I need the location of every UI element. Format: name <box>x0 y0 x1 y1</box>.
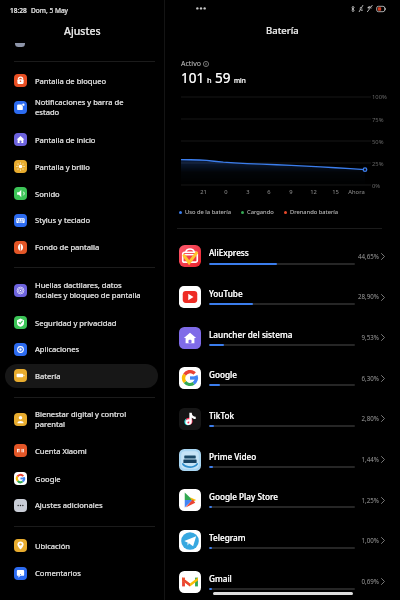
button[interactable] <box>165 440 400 480</box>
staticText: Google <box>209 369 237 380</box>
button[interactable] <box>165 562 400 600</box>
staticText: Launcher del sistema <box>209 329 293 340</box>
staticText: AliExpress <box>209 247 249 258</box>
button[interactable] <box>5 278 158 308</box>
staticText: Aplicaciones <box>35 344 80 354</box>
button[interactable] <box>5 493 158 519</box>
staticText: 101 <box>181 69 205 87</box>
staticText: 9,53% <box>361 333 379 341</box>
button[interactable] <box>5 154 158 180</box>
staticText: Sonido <box>35 189 60 199</box>
button[interactable] <box>5 95 158 125</box>
staticText: Dom, 5 May <box>31 6 68 15</box>
button[interactable] <box>5 407 158 437</box>
staticText: 1,25% <box>361 496 379 504</box>
button[interactable] <box>165 521 400 561</box>
staticText: 0 <box>224 188 228 196</box>
staticText: Activo <box>181 59 201 69</box>
staticText: Stylus y teclado <box>35 215 91 225</box>
staticText: Ubicación <box>35 541 70 551</box>
staticText: Cuenta Xiaomi <box>35 446 87 456</box>
button[interactable] <box>5 438 158 464</box>
button[interactable] <box>5 208 158 234</box>
button[interactable] <box>165 236 400 276</box>
staticText: 6,30% <box>361 374 379 382</box>
staticText: 3 <box>246 188 250 196</box>
staticText: Batería <box>35 371 61 381</box>
staticText: 0,69% <box>361 577 379 585</box>
staticText: Drenando batería <box>290 208 339 216</box>
staticText: 9 <box>289 188 293 196</box>
staticText: 12 <box>310 188 317 196</box>
button[interactable] <box>165 358 400 398</box>
staticText: 44,65% <box>358 252 379 260</box>
staticText: Uso de la batería <box>185 208 231 216</box>
staticText: 15 <box>332 188 339 196</box>
staticText: Bienestar digital y control parental <box>35 409 127 430</box>
staticText: Pantalla y brillo <box>35 162 90 172</box>
button[interactable] <box>5 310 158 336</box>
button[interactable] <box>5 235 158 261</box>
button[interactable] <box>165 480 400 520</box>
staticText: YouTube <box>209 288 243 299</box>
staticText: 21 <box>200 188 207 196</box>
staticText: 100% <box>372 93 387 101</box>
staticText: Seguridad y privacidad <box>35 318 117 328</box>
staticText: Ahora <box>348 188 365 196</box>
button[interactable] <box>5 364 158 388</box>
staticText: 2,80% <box>361 414 379 422</box>
staticText: Pantalla de bloqueo <box>35 76 107 86</box>
staticText: Ajustes adicionales <box>35 500 103 510</box>
button[interactable] <box>5 561 158 587</box>
staticText: Telegram <box>209 532 246 543</box>
staticText: h <box>207 75 212 85</box>
staticText: 1,44% <box>361 455 379 463</box>
button[interactable] <box>5 466 158 492</box>
staticText: 75% <box>372 116 384 124</box>
staticText: 0% <box>372 182 381 190</box>
button[interactable]: More options <box>194 3 208 14</box>
staticText: 59 <box>215 69 231 87</box>
button[interactable] <box>5 533 158 559</box>
staticText: Comentarios <box>35 568 81 578</box>
staticText: Google <box>35 474 61 484</box>
staticText: Cargando <box>247 208 274 216</box>
staticText: 6 <box>267 188 271 196</box>
staticText: 1,00% <box>361 536 379 544</box>
staticText: Huellas dactilares, datos faciales y blo… <box>35 280 141 301</box>
staticText: Prime Video <box>209 451 257 462</box>
button[interactable] <box>165 277 400 317</box>
staticText: Ajustes <box>64 24 101 38</box>
staticText: Batería <box>266 24 299 37</box>
button[interactable] <box>5 127 158 153</box>
staticText: TikTok <box>209 410 234 421</box>
staticText: min <box>234 76 246 85</box>
staticText: Gmail <box>209 573 232 584</box>
staticText: 25% <box>372 160 384 168</box>
staticText: Notificaciones y barra de estado <box>35 97 124 118</box>
staticText: 28,90% <box>358 292 379 300</box>
button[interactable] <box>5 181 158 207</box>
button[interactable] <box>5 337 158 363</box>
staticText: Pantalla de inicio <box>35 135 96 145</box>
button[interactable] <box>165 318 400 358</box>
staticText: 18:28 <box>10 6 27 15</box>
button[interactable] <box>5 68 158 94</box>
staticText: Fondo de pantalla <box>35 242 100 252</box>
staticText: Google Play Store <box>209 491 279 502</box>
button[interactable] <box>165 399 400 439</box>
staticText: 50% <box>372 138 384 146</box>
